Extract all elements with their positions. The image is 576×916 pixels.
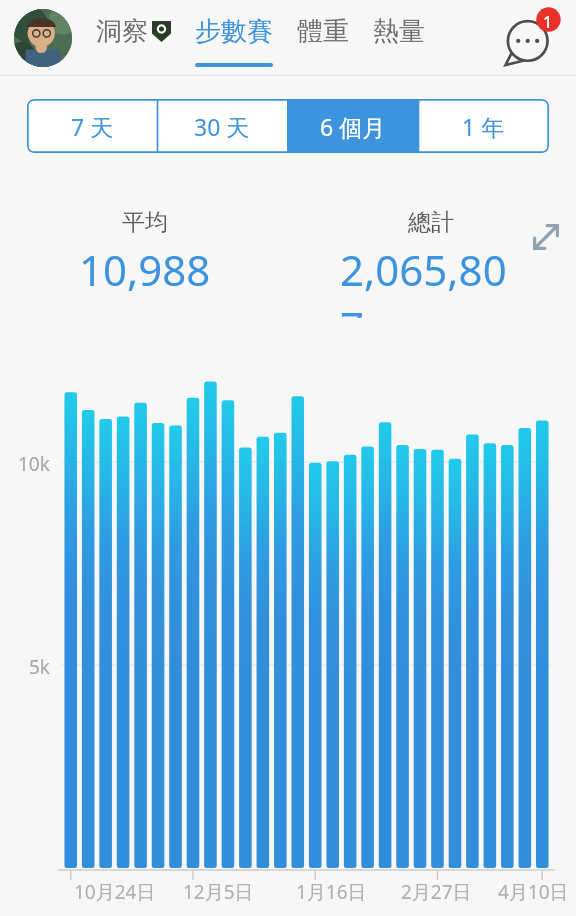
staticText: 熱量: [373, 15, 425, 48]
staticText: 2月27日: [401, 879, 472, 905]
staticText: 1: [543, 11, 553, 33]
button[interactable]: 6 個月: [287, 99, 418, 153]
button[interactable]: 洞察: [96, 0, 171, 72]
staticText: 10,988: [79, 241, 211, 298]
button[interactable]: 1 年: [418, 99, 549, 153]
staticText: 平均: [122, 208, 168, 237]
button[interactable]: 步數賽: [195, 0, 273, 72]
staticText: 7 天: [71, 111, 114, 142]
button[interactable]: 30 天: [157, 99, 287, 153]
staticText: 6 個月: [320, 111, 386, 142]
staticText: 2,065,807: [340, 241, 522, 318]
staticText: 30 天: [194, 111, 250, 142]
button[interactable]: Expand: [527, 218, 565, 256]
staticText: 10月24日: [74, 879, 156, 905]
staticText: 5k: [29, 654, 51, 680]
staticText: 總計: [408, 208, 454, 237]
staticText: 步數賽: [195, 15, 273, 48]
button[interactable]: Profile: [14, 9, 72, 67]
staticText: 洞察: [96, 15, 148, 48]
button[interactable]: 7 天: [27, 99, 157, 153]
staticText: 10k: [18, 451, 50, 477]
staticText: 12月5日: [183, 879, 254, 905]
button[interactable]: 熱量: [373, 0, 425, 72]
staticText: 1 年: [462, 111, 505, 142]
staticText: 體重: [297, 15, 349, 48]
staticText: 1月16日: [296, 879, 367, 905]
button[interactable]: 體重: [297, 0, 349, 72]
staticText: 4月10日: [498, 879, 569, 905]
button[interactable]: Messages: [498, 4, 564, 70]
